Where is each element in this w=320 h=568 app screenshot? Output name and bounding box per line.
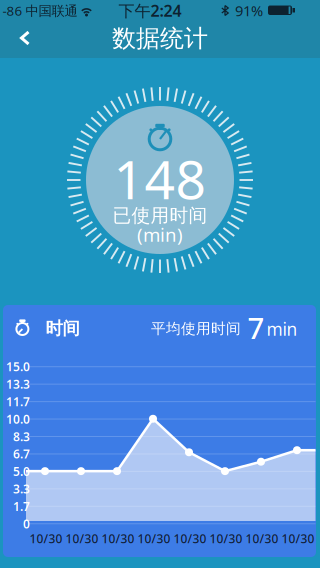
staticText: 10/30: [65, 530, 98, 546]
staticText: min: [266, 317, 297, 340]
staticText: 13.3: [6, 376, 30, 392]
staticText: 10.0: [6, 411, 30, 427]
staticText: (min): [137, 222, 183, 247]
staticText: 平均使用时间: [151, 319, 241, 337]
staticText: 10/30: [101, 530, 134, 546]
staticText: 10/30: [29, 530, 62, 546]
staticText: 91%: [235, 1, 263, 20]
staticText: 3.3: [13, 481, 30, 497]
staticText: 已使用时间: [112, 204, 207, 227]
staticText: 148: [113, 143, 206, 214]
staticText: 10/30: [173, 530, 206, 546]
staticText: 6.7: [13, 446, 30, 462]
staticText: 下午2:24: [118, 0, 181, 21]
staticText: 5.0: [13, 463, 30, 479]
staticText: 时间: [45, 318, 79, 339]
staticText: 数据统计: [112, 24, 208, 53]
staticText: 11.7: [6, 394, 30, 409]
staticText: 8.3: [13, 428, 30, 444]
staticText: -86 中国联通: [2, 2, 77, 19]
staticText: 0: [23, 516, 30, 532]
staticText: 15.0: [6, 359, 30, 375]
button[interactable]: Back: [2, 17, 46, 61]
staticText: 7: [247, 308, 264, 347]
staticText: 10/30: [209, 530, 242, 546]
staticText: 1.7: [13, 498, 30, 514]
staticText: 10/30: [281, 530, 314, 546]
staticText: 10/30: [245, 530, 278, 546]
staticText: 10/30: [137, 530, 170, 546]
